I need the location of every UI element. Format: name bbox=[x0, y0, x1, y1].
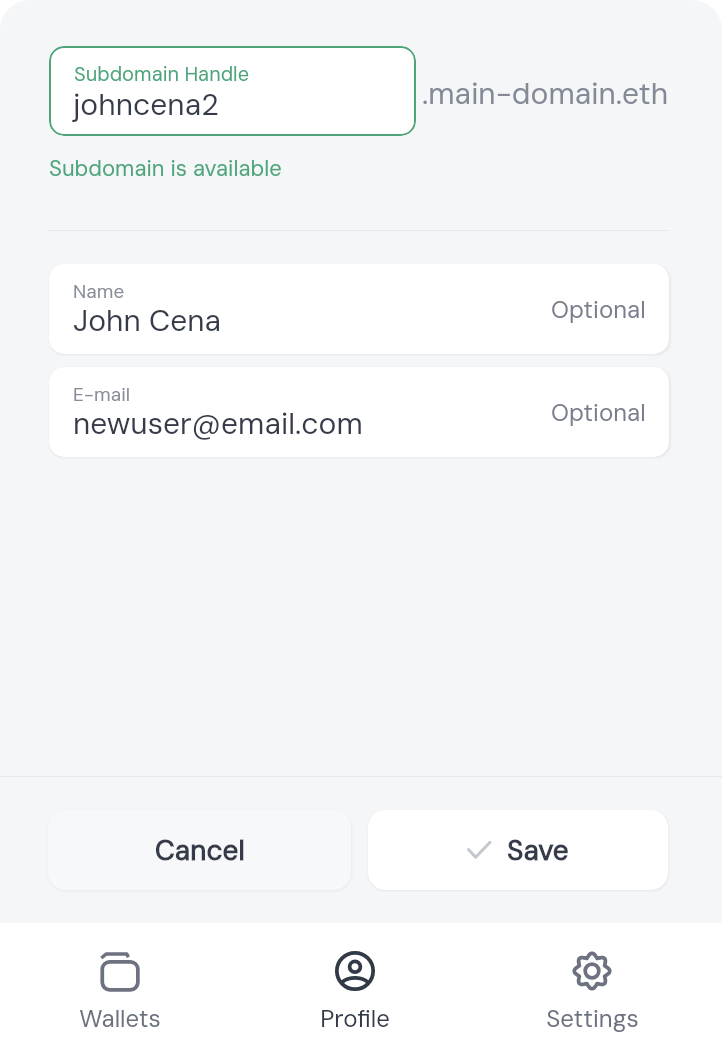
button[interactable]: Profile bbox=[275, 923, 435, 1062]
button[interactable]: E-mail bbox=[49, 367, 669, 457]
staticText: Optional bbox=[551, 397, 646, 428]
button[interactable]: Save bbox=[368, 810, 668, 890]
staticText: Wallets bbox=[79, 1003, 161, 1034]
staticText: Save bbox=[507, 832, 569, 868]
staticText: johncena2 bbox=[73, 85, 219, 124]
staticText: Settings bbox=[546, 1003, 639, 1034]
button[interactable]: Wallets bbox=[40, 923, 200, 1062]
staticText: Subdomain is available bbox=[49, 154, 282, 183]
staticText: John Cena bbox=[73, 301, 222, 340]
button[interactable]: Subdomain Handle bbox=[49, 46, 416, 136]
button[interactable]: Settings bbox=[512, 923, 672, 1062]
staticText: Subdomain Handle bbox=[74, 61, 249, 87]
staticText: Optional bbox=[551, 294, 646, 325]
other: Wallets bbox=[98, 949, 142, 993]
staticText: newuser@email.com bbox=[73, 404, 363, 443]
staticText: Cancel bbox=[155, 832, 245, 868]
staticText: .main-domain.eth bbox=[422, 74, 669, 113]
staticText: Profile bbox=[320, 1003, 390, 1034]
staticText: Name bbox=[73, 279, 125, 304]
staticText: E-mail bbox=[73, 382, 131, 407]
other: Profile bbox=[333, 949, 377, 993]
other: Settings bbox=[570, 949, 614, 993]
button[interactable]: Cancel bbox=[48, 810, 351, 890]
button[interactable]: Name bbox=[49, 264, 669, 354]
